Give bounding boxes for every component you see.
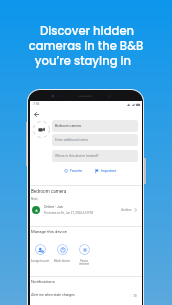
staticText: Enter additional notes: [55, 138, 88, 142]
staticText: Online - Jun: [44, 205, 63, 209]
staticText: Where is this device located?: [55, 154, 99, 158]
staticText: Pause internet: [73, 259, 95, 265]
staticText: cameras in the B&B: [0, 38, 172, 54]
staticText: Notifications: [31, 279, 55, 284]
staticText: 7:55: [33, 102, 40, 106]
button[interactable]: Device photo: [33, 121, 50, 138]
staticText: Block device: [51, 259, 73, 262]
staticText: Assign to user: [29, 259, 51, 262]
staticText: Bedroom camera: [31, 189, 67, 194]
staticText: Archive: [121, 208, 132, 212]
staticText: Nest: [31, 197, 38, 201]
staticText: First seen on Fri, Jun 21, 2024 4:13 PM: [44, 211, 93, 214]
button[interactable]: Block device: [51, 244, 73, 262]
staticText: Alert me when state changes: [31, 293, 75, 297]
button[interactable]: Where is this device located?: [52, 150, 138, 162]
button[interactable]: Pause internet: [73, 244, 95, 265]
button[interactable]: Assign to user: [29, 244, 51, 262]
button[interactable]: Favorite: [64, 168, 83, 174]
staticText: Discover hidden: [1, 23, 172, 39]
button[interactable]: Back: [31, 109, 41, 119]
staticText: Important: [101, 169, 116, 173]
button[interactable]: Archive: [121, 208, 138, 212]
staticText: Manage this device: [31, 229, 68, 234]
staticText: Favorite: [70, 169, 83, 173]
button[interactable]: Bedroom camera: [52, 120, 138, 132]
button[interactable]: Important: [95, 168, 116, 174]
button[interactable]: Enter additional notes: [52, 134, 138, 146]
button[interactable]: Alert me when state changes: [30, 289, 142, 301]
staticText: Bedroom camera: [55, 124, 81, 128]
staticText: you’re staying in: [0, 53, 169, 69]
